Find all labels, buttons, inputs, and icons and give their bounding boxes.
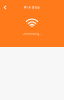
button[interactable]: Back: [2, 5, 8, 10]
staticText: Wi-Fi Setup: [24, 6, 40, 9]
staticText: Connecting…: [22, 32, 41, 35]
